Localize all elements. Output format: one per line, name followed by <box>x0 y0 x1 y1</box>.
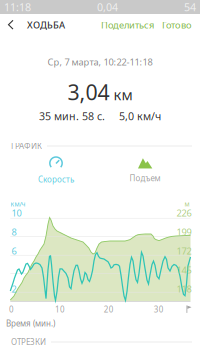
staticText: 11:18 <box>4 0 31 14</box>
button[interactable]: Подъем <box>105 153 185 187</box>
staticText: Готово <box>162 19 192 31</box>
staticText: Время (мин.) <box>6 318 55 329</box>
staticText: 30 <box>154 304 164 315</box>
staticText: 54 <box>184 0 196 14</box>
staticText: 145 <box>176 264 191 276</box>
staticText: ГРАФИК <box>11 141 42 151</box>
staticText: 10 <box>11 207 21 219</box>
staticText: 2 <box>11 283 16 295</box>
staticText: 0,04 <box>97 0 118 14</box>
staticText: Ср, 7 марта, 10:22-11:18 <box>47 56 152 68</box>
staticText: 35 мин. 58 с. <box>39 109 105 123</box>
staticText: 0 <box>9 304 14 315</box>
staticText: 3,04 <box>67 78 109 106</box>
staticText: 6 <box>11 245 16 257</box>
staticText: ХОДЬБА <box>27 19 65 31</box>
staticText: 118 <box>176 283 191 295</box>
button[interactable]: Готово <box>157 14 200 36</box>
staticText: км/ч <box>10 200 25 208</box>
button[interactable]: Скорость <box>16 153 96 187</box>
staticText: Поделиться <box>101 19 154 31</box>
button[interactable]: Back <box>0 14 22 36</box>
staticText: м <box>184 200 189 208</box>
staticText: 226 <box>176 207 191 219</box>
staticText: 172 <box>176 245 191 257</box>
staticText: км <box>113 85 132 104</box>
staticText: Скорость <box>38 174 74 185</box>
staticText: 10 <box>55 304 65 315</box>
staticText: 199 <box>176 226 191 238</box>
staticText: Подъем <box>129 173 160 183</box>
staticText: 5,0 км/ч <box>119 109 161 123</box>
staticText: 20 <box>104 304 114 315</box>
button[interactable]: Поделиться <box>98 14 157 36</box>
staticText: 8 <box>11 226 16 238</box>
staticText: ОТРЕЗКИ <box>11 337 46 347</box>
